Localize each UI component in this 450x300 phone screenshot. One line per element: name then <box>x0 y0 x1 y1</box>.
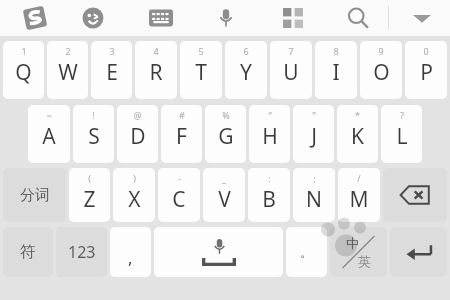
button[interactable]: Apps <box>272 0 314 36</box>
staticText: 1 <box>21 45 27 57</box>
staticText: F <box>176 122 187 151</box>
button[interactable]: , <box>110 227 151 277</box>
staticText: @ <box>133 109 142 121</box>
staticText: P <box>420 58 433 87</box>
staticText: 5 <box>198 45 204 57</box>
button[interactable]: Sogou input method <box>14 0 56 36</box>
staticText: B <box>262 185 276 214</box>
button[interactable]: Emoji <box>72 0 114 36</box>
staticText: 。 <box>300 244 313 260</box>
staticText: ? <box>400 109 404 121</box>
button[interactable]: / <box>338 168 380 222</box>
staticText: S <box>88 122 100 151</box>
button[interactable]: Space and voice input <box>154 227 283 277</box>
button[interactable]: ” <box>293 105 334 163</box>
staticText: 2 <box>65 45 71 57</box>
button[interactable]: 0 <box>405 41 447 99</box>
staticText: ; <box>313 172 316 184</box>
staticText: Q <box>15 58 32 87</box>
staticText: ~ <box>46 109 52 121</box>
button[interactable]: Enter <box>390 227 447 277</box>
staticText: 8 <box>333 45 339 57</box>
button[interactable]: - <box>158 168 200 222</box>
staticText: C <box>172 185 186 214</box>
button[interactable]: * <box>337 105 378 163</box>
button[interactable]: “ <box>249 105 290 163</box>
staticText: 123 <box>68 241 96 263</box>
button[interactable]: Collapse keyboard <box>402 0 442 36</box>
staticText: 分词 <box>20 186 50 205</box>
staticText: N <box>306 185 322 214</box>
button[interactable]: 符 <box>3 227 53 277</box>
staticText: V <box>218 185 231 214</box>
button[interactable]: ? <box>381 105 422 163</box>
button[interactable]: 2 <box>47 41 88 99</box>
staticText: I <box>332 58 340 87</box>
staticText: R <box>149 58 163 87</box>
staticText: % <box>222 109 230 121</box>
staticText: K <box>351 122 364 151</box>
staticText: 9 <box>378 45 384 57</box>
staticText: Z <box>83 185 96 214</box>
staticText: _ <box>222 172 226 184</box>
staticText: O <box>373 58 390 87</box>
button[interactable]: 123 <box>56 227 107 277</box>
staticText: / <box>357 172 361 184</box>
button[interactable]: % <box>205 105 246 163</box>
button[interactable]: 7 <box>270 41 312 99</box>
button[interactable]: Chinese English toggle <box>330 227 387 277</box>
staticText: H <box>262 122 278 151</box>
button[interactable]: : <box>248 168 290 222</box>
staticText: 4 <box>153 45 159 57</box>
button[interactable]: ! <box>73 105 114 163</box>
staticText: G <box>218 122 234 151</box>
button[interactable]: Voice input <box>205 0 247 36</box>
staticText: X <box>128 185 141 214</box>
staticText: - <box>178 172 181 184</box>
staticText: # <box>179 109 185 121</box>
staticText: 7 <box>288 45 294 57</box>
button[interactable]: 3 <box>91 41 132 99</box>
button[interactable]: 1 <box>3 41 44 99</box>
staticText: D <box>130 122 146 151</box>
button[interactable]: ~ <box>28 105 70 163</box>
button[interactable]: _ <box>203 168 245 222</box>
staticText: ) <box>133 172 136 184</box>
staticText: 3 <box>109 45 115 57</box>
button[interactable]: # <box>161 105 202 163</box>
button[interactable]: ) <box>113 168 155 222</box>
staticText: * <box>355 109 360 121</box>
staticText: 符 <box>20 242 36 262</box>
staticText: W <box>58 58 78 87</box>
button[interactable]: 分词 <box>3 168 66 222</box>
button[interactable]: 9 <box>360 41 402 99</box>
staticText: , <box>128 246 133 269</box>
staticText: ! <box>92 109 95 121</box>
staticText: 英 <box>358 253 371 269</box>
staticText: 6 <box>243 45 249 57</box>
button[interactable]: 5 <box>180 41 222 99</box>
staticText: “ <box>268 109 272 121</box>
button[interactable]: 。 <box>286 227 327 277</box>
staticText: M <box>349 185 369 214</box>
button[interactable]: @ <box>117 105 158 163</box>
staticText: U <box>283 58 299 87</box>
staticText: 0 <box>423 45 429 57</box>
button[interactable]: Search <box>337 0 379 36</box>
staticText: E <box>106 58 118 87</box>
button[interactable]: ; <box>293 168 335 222</box>
button[interactable]: Backspace <box>383 168 447 222</box>
staticText: A <box>42 122 56 151</box>
button[interactable]: Keyboard layout <box>140 0 182 36</box>
button[interactable]: 8 <box>315 41 357 99</box>
staticText: ” <box>312 109 316 121</box>
staticText: Y <box>240 58 252 87</box>
button[interactable]: 6 <box>225 41 267 99</box>
staticText: : <box>268 172 271 184</box>
button[interactable]: ( <box>69 168 110 222</box>
staticText: ( <box>88 172 91 184</box>
staticText: 中 <box>346 235 359 251</box>
button[interactable]: 4 <box>135 41 177 99</box>
staticText: L <box>396 122 408 151</box>
staticText: T <box>195 58 207 87</box>
